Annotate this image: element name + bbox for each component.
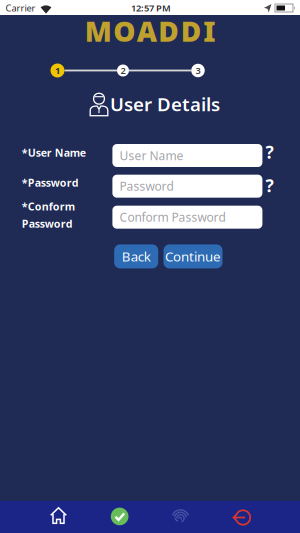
button[interactable]: Back xyxy=(114,244,158,268)
button[interactable] xyxy=(226,501,256,533)
staticText: Carrier xyxy=(5,2,35,14)
staticText: Conform Password xyxy=(119,209,225,225)
button[interactable]: Password xyxy=(112,175,262,198)
staticText: 2 xyxy=(120,64,125,77)
staticText: Password xyxy=(119,178,173,194)
staticText: User Details xyxy=(110,92,220,116)
staticText: 12:57 PM xyxy=(131,2,171,14)
staticText: *Password xyxy=(22,175,79,190)
staticText: User Name xyxy=(119,147,183,163)
button[interactable]: ? xyxy=(265,140,273,163)
staticText: *User Name xyxy=(22,145,86,160)
button[interactable]: User Name xyxy=(112,144,262,167)
staticText: Back xyxy=(122,247,151,265)
staticText: Continue xyxy=(165,247,221,265)
staticText: ? xyxy=(265,174,273,197)
button[interactable]: ? xyxy=(265,174,273,197)
staticText: *Conform xyxy=(22,199,75,213)
staticText: ? xyxy=(265,140,273,163)
staticText: 1 xyxy=(55,64,60,77)
button[interactable] xyxy=(105,501,135,533)
button[interactable]: Continue xyxy=(163,244,222,268)
staticText: MOADDI xyxy=(85,12,215,50)
staticText: 3 xyxy=(195,64,200,77)
staticText: Password xyxy=(22,216,73,231)
button[interactable] xyxy=(43,501,73,533)
button[interactable] xyxy=(165,501,195,533)
button[interactable]: Conform Password xyxy=(112,206,262,229)
